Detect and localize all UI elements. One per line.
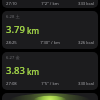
button[interactable]: 27:10 — [2, 0, 98, 8]
staticText: 7'5" / km — [33, 81, 67, 87]
staticText: km — [27, 66, 40, 77]
staticText: 7'30" / km — [33, 40, 67, 46]
staticText: 330 kcal — [67, 81, 94, 87]
staticText: 28:25 — [6, 40, 33, 46]
button[interactable]: Next activity — [2, 93, 98, 100]
staticText: 3.79 — [6, 23, 25, 36]
button[interactable]: 6.27 金 — [2, 52, 98, 90]
staticText: 333 kcal — [67, 1, 94, 7]
staticText: 326 kcal — [67, 40, 94, 46]
staticText: 6.28 土 — [6, 14, 20, 20]
staticText: 27:08 — [6, 81, 33, 87]
staticText: km — [27, 25, 40, 36]
staticText: 27:10 — [6, 1, 33, 7]
staticText: 6.27 金 — [6, 55, 20, 61]
staticText: 7'2" / km — [33, 1, 67, 7]
button[interactable]: 6.28 土 — [2, 11, 98, 49]
staticText: 3.83 — [6, 64, 25, 77]
